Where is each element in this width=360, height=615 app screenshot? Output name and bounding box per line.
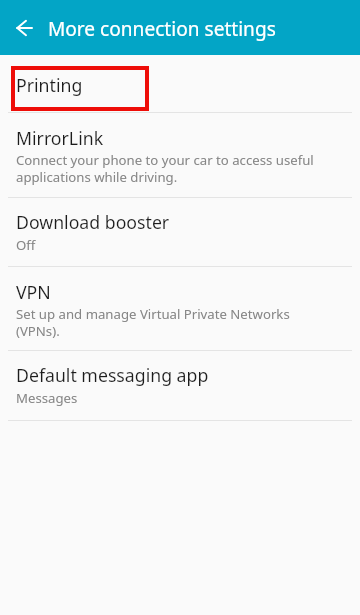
staticText: MirrorLink [16,129,104,150]
staticText: Printing [16,76,83,97]
staticText: More connection settings [48,16,276,42]
staticText: VPN [16,283,51,304]
button[interactable]: Navigate up [0,0,48,55]
button[interactable]: Download booster [0,198,360,266]
staticText: Default messaging app [16,366,209,387]
button[interactable]: Printing [0,55,360,112]
button[interactable]: MirrorLink [0,113,360,197]
staticText: Off [16,237,36,254]
button[interactable]: Default messaging app [0,351,360,420]
staticText: Connect your phone to your car to access… [16,152,314,186]
button[interactable]: VPN [0,267,360,350]
staticText: Messages [16,390,78,407]
staticText: Set up and manage Virtual Private Networ… [16,306,290,340]
staticText: Download booster [16,213,170,234]
